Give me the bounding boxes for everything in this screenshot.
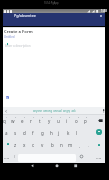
button[interactable]: t	[36, 116, 44, 126]
staticText: n	[60, 142, 63, 148]
button[interactable]: ?123	[94, 152, 104, 162]
staticText: b	[51, 142, 54, 148]
staticText: anyone among annual angry ask	[33, 109, 76, 113]
staticText: 6	[51, 116, 53, 119]
button[interactable]: v	[38, 140, 46, 150]
button[interactable]: w	[9, 116, 17, 126]
staticText: Untitled	[4, 35, 15, 39]
button[interactable]	[94, 140, 104, 150]
staticText: t	[39, 118, 41, 124]
button[interactable]: d	[20, 128, 28, 138]
staticText: v	[41, 142, 44, 148]
staticText: j	[58, 130, 60, 136]
staticText: Enter a description	[5, 44, 31, 48]
staticText: u	[57, 118, 60, 124]
button[interactable]: p	[81, 116, 89, 126]
staticText: 5554:PgApp	[44, 1, 59, 5]
staticText: w	[11, 118, 15, 124]
button[interactable]: o	[72, 116, 80, 126]
staticText: r	[30, 118, 32, 124]
staticText: Create a Form	[4, 29, 33, 35]
button[interactable]: i	[63, 116, 71, 126]
button[interactable]: u	[54, 116, 62, 126]
button[interactable]: f	[29, 128, 37, 138]
staticText: .	[88, 143, 90, 148]
button[interactable]: z	[11, 140, 19, 150]
button[interactable]: q	[0, 116, 8, 126]
staticText: s	[14, 130, 17, 136]
button[interactable]	[78, 152, 86, 162]
button[interactable]	[94, 116, 104, 126]
staticText: ?123	[96, 156, 102, 159]
button[interactable]: s	[11, 128, 19, 138]
button[interactable]: n	[57, 140, 65, 150]
staticText: ,	[79, 143, 81, 148]
button[interactable]: c	[29, 140, 37, 150]
staticText: a	[5, 130, 8, 136]
staticText: 4	[33, 116, 35, 119]
staticText: 8	[69, 116, 71, 119]
button[interactable]	[4, 43, 64, 51]
staticText: y	[48, 118, 51, 124]
staticText: 3	[24, 116, 26, 119]
button[interactable]: l	[73, 128, 81, 138]
button[interactable]: y	[45, 116, 53, 126]
button[interactable]: e	[18, 116, 26, 126]
button[interactable]	[3, 140, 11, 150]
button[interactable]: j	[55, 128, 63, 138]
staticText: 1	[6, 116, 8, 119]
staticText: p	[84, 118, 87, 124]
button[interactable]	[96, 129, 102, 135]
button[interactable]	[94, 128, 104, 138]
staticText: x	[23, 142, 26, 148]
button[interactable]: m	[66, 140, 74, 150]
staticText: h	[50, 130, 53, 136]
button[interactable]: r	[27, 116, 35, 126]
staticText: i	[66, 118, 68, 124]
staticText: e	[21, 118, 24, 124]
button[interactable]: ,	[76, 140, 84, 150]
staticText: k	[67, 130, 70, 136]
button[interactable]: a	[2, 128, 10, 138]
staticText: g	[41, 130, 44, 136]
staticText: 0	[86, 116, 88, 119]
button[interactable]: b	[48, 140, 56, 150]
staticText: Pg/absentee	[14, 13, 36, 18]
button[interactable]: g	[38, 128, 46, 138]
staticText: /	[14, 155, 16, 159]
button[interactable]	[30, 164, 78, 168]
staticText: 5	[42, 116, 44, 119]
staticText: q	[3, 118, 6, 124]
staticText: l	[76, 130, 78, 136]
button[interactable]: /	[12, 152, 18, 162]
staticText: c	[32, 142, 35, 148]
staticText: m	[68, 142, 73, 148]
staticText: o	[75, 118, 78, 124]
staticText: 2	[15, 116, 17, 119]
button[interactable]: x	[20, 140, 28, 150]
button[interactable]: ?123	[3, 152, 11, 162]
staticText: 9	[78, 116, 80, 119]
staticText: d	[23, 130, 26, 136]
button[interactable]: k	[64, 128, 72, 138]
staticText: 7	[60, 116, 62, 119]
staticText: z	[14, 142, 17, 148]
staticText: ?123	[4, 156, 10, 159]
button[interactable]: h	[47, 128, 55, 138]
staticText: 1:38	[101, 9, 107, 13]
staticText: f	[32, 130, 34, 136]
